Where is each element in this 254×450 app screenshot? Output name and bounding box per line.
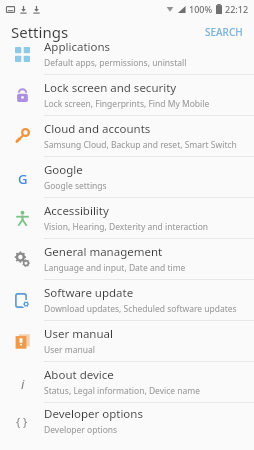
staticText: Developer options [44, 424, 118, 436]
button[interactable]: General management [0, 239, 254, 279]
staticText: Google settings [44, 180, 107, 192]
staticText: Accessibility [44, 203, 109, 219]
staticText: SEARCH [205, 25, 243, 39]
staticText: General management [44, 244, 163, 260]
staticText: User manual [44, 326, 113, 342]
staticText: Lock screen and security [44, 80, 177, 96]
button[interactable]: Accessibility [0, 198, 254, 238]
staticText: Download updates, Scheduled software upd… [44, 303, 237, 315]
button[interactable]: Applications [0, 33, 254, 74]
button[interactable]: Lock screen and security [0, 75, 254, 115]
button[interactable]: Google [0, 157, 254, 197]
staticText: About device [44, 367, 114, 383]
staticText: Status, Legal information, Device name [44, 385, 201, 397]
button[interactable]: User manual [0, 321, 254, 361]
other: Google [15, 170, 30, 185]
staticText: 22:12 [225, 3, 249, 15]
other: User manual [15, 334, 30, 349]
staticText: i [21, 375, 25, 390]
button[interactable]: SEARCH [194, 21, 254, 43]
staticText: Vision, Hearing, Dexterity and interacti… [44, 221, 209, 233]
staticText: Developer options [44, 406, 143, 422]
other: Developer options [14, 413, 30, 429]
staticText: Applications [44, 39, 111, 55]
staticText: { } [16, 414, 28, 429]
other: Accessibility [15, 211, 30, 226]
staticText: Lock screen, Fingerprints, Find My Mobil… [44, 98, 210, 110]
other: About device [15, 375, 30, 390]
staticText: Google [44, 162, 83, 178]
other: Software update [15, 293, 30, 308]
staticText: G [18, 170, 28, 185]
button[interactable]: Developer options [0, 403, 254, 438]
staticText: Language and input, Date and time [44, 262, 186, 274]
staticText: User manual [44, 344, 95, 356]
staticText: 100% [189, 3, 213, 15]
button[interactable]: About device [0, 362, 254, 402]
other: General management [14, 251, 30, 267]
staticText: Settings [11, 22, 69, 42]
other: Cloud and accounts [14, 128, 30, 144]
button[interactable]: Cloud and accounts [0, 116, 254, 156]
staticText: Software update [44, 285, 134, 301]
staticText: Samsung Cloud, Backup and reset, Smart S… [44, 139, 237, 151]
staticText: Default apps, permissions, uninstall [44, 57, 187, 69]
staticText: Cloud and accounts [44, 121, 151, 137]
button[interactable]: Software update [0, 280, 254, 320]
other: Lock screen and security [15, 88, 30, 103]
other: Applications [15, 47, 30, 62]
